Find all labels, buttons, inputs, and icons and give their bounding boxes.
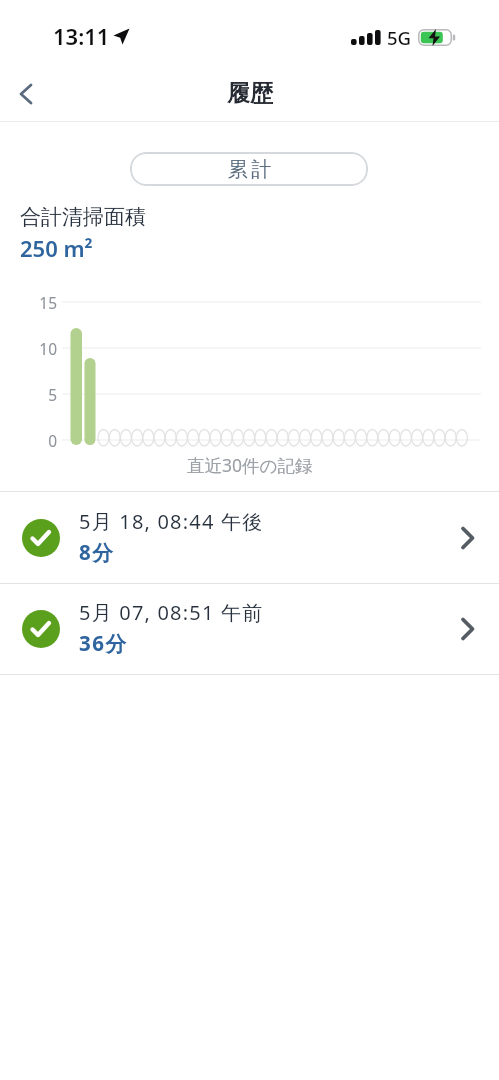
staticText: 5月 07, 08:51 午前 [79, 599, 264, 626]
staticText: 15 [29, 292, 57, 313]
staticText: 5 [29, 384, 57, 405]
staticText: 250 m² [20, 233, 93, 263]
staticText: 累計 [226, 157, 273, 182]
staticText: 10 [29, 338, 57, 359]
staticText: 5月 18, 08:44 午後 [79, 508, 264, 535]
button[interactable] [10, 80, 40, 108]
button[interactable]: 累計 [130, 152, 368, 186]
button[interactable]: 5月 07, 08:51 午前 [0, 583, 499, 674]
staticText: 履歴 [227, 79, 273, 108]
staticText: 36分 [79, 629, 128, 657]
button[interactable]: 5月 18, 08:44 午後 [0, 492, 499, 583]
staticText: 合計清掃面積 [20, 204, 146, 230]
staticText: 直近30件の記録 [187, 453, 313, 477]
staticText: 0 [29, 430, 57, 451]
staticText: 8分 [79, 538, 115, 566]
staticText: 13:11 [53, 21, 110, 51]
staticText: 5G [387, 25, 412, 50]
